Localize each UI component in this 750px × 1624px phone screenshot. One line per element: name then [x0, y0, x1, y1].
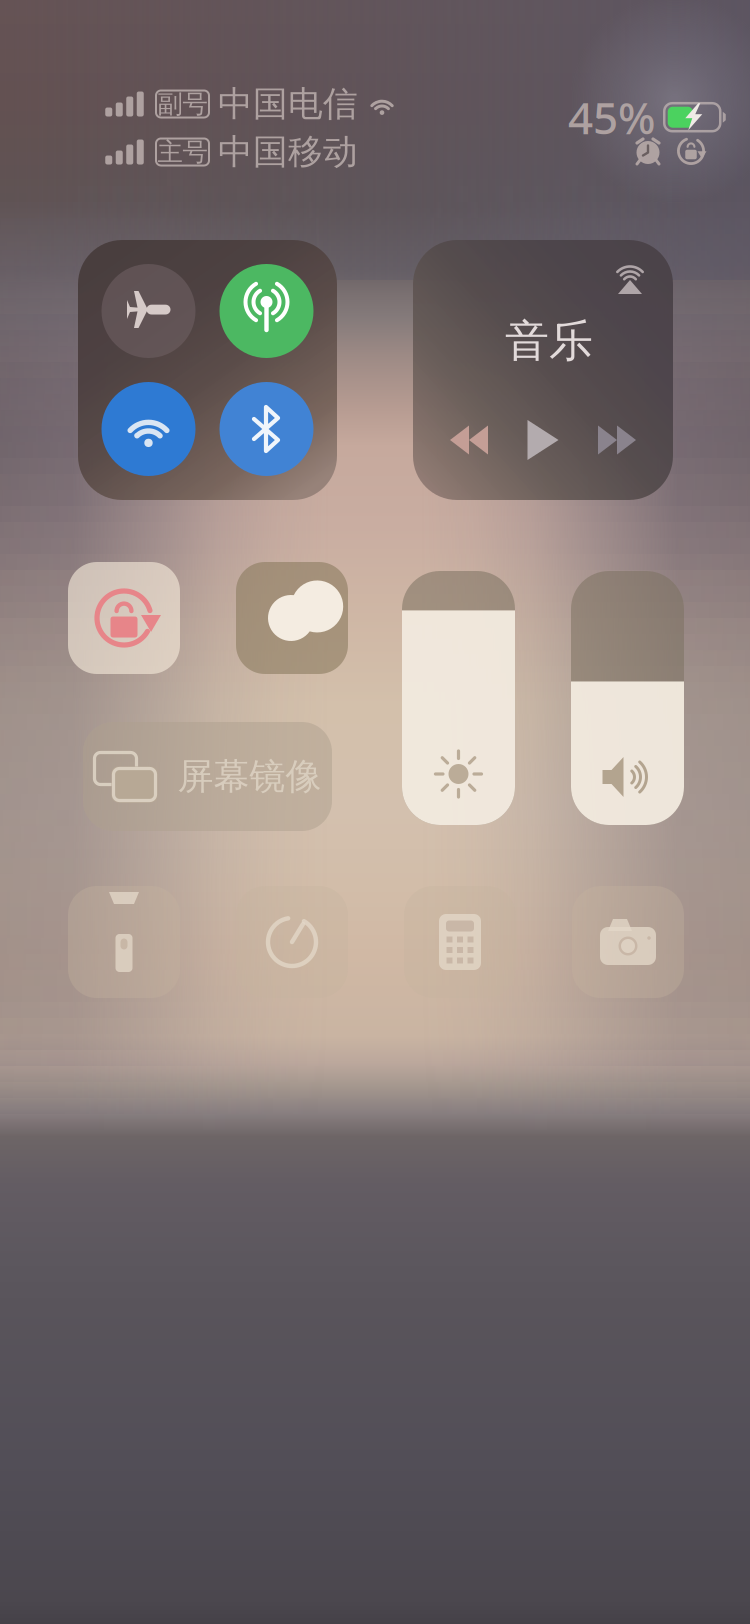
- staticText: 45%: [568, 88, 655, 146]
- button[interactable]: Airplane Mode: [101, 264, 195, 358]
- button[interactable]: Brightness: [402, 571, 515, 825]
- button[interactable]: Do Not Disturb: [236, 562, 348, 674]
- staticText: 中国电信: [218, 83, 358, 125]
- staticText: 中国移动: [218, 131, 358, 173]
- button[interactable]: Cellular Data: [219, 264, 313, 358]
- button[interactable]: Camera: [572, 886, 684, 998]
- button[interactable]: Previous track: [432, 412, 506, 468]
- button[interactable]: AirPlay: [611, 258, 649, 298]
- staticText: 主号: [157, 136, 207, 167]
- button[interactable]: Calculator: [404, 886, 516, 998]
- button[interactable]: Wi-Fi: [101, 382, 195, 476]
- button[interactable]: Play: [506, 412, 580, 468]
- button[interactable]: 屏幕镜像: [83, 722, 332, 831]
- button[interactable]: Timer: [236, 886, 348, 998]
- button[interactable]: Rotation Lock: [68, 562, 180, 674]
- button[interactable]: Next track: [580, 412, 654, 468]
- button[interactable]: Volume: [571, 571, 684, 825]
- button[interactable]: Bluetooth: [219, 382, 313, 476]
- staticText: 副号: [157, 88, 207, 119]
- button[interactable]: Flashlight: [68, 886, 180, 998]
- staticText: 音乐: [505, 314, 593, 368]
- staticText: 屏幕镜像: [177, 754, 321, 799]
